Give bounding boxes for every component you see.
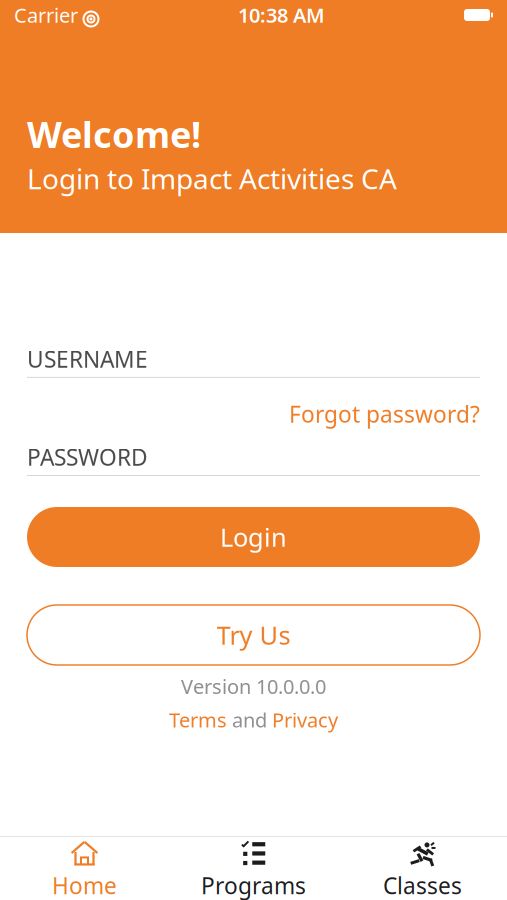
staticText: Welcome! [27,110,201,158]
staticText: Carrier [14,2,78,28]
staticText: Programs [201,870,306,900]
staticText: Home [52,870,117,900]
staticText: Login [220,520,287,554]
staticText: Privacy [272,707,338,733]
button[interactable]: Privacy [272,707,338,733]
staticText: 10:38 AM [238,2,325,28]
staticText: PASSWORD [27,442,148,472]
staticText: USERNAME [27,344,148,374]
button[interactable]: Terms [169,707,227,733]
staticText: Try Us [216,618,290,652]
staticText: and [232,707,267,733]
staticText: Login to Impact Activities CA [27,160,397,197]
button[interactable]: Home [0,830,169,900]
button[interactable]: Classes [338,830,507,900]
button[interactable]: Forgot password? [27,396,480,432]
button[interactable]: Programs [169,830,338,900]
staticText: Forgot password? [289,399,480,429]
staticText: Version 10.0.0.0 [181,673,326,700]
button[interactable]: Try Us [27,605,480,665]
button[interactable]: Login [27,507,480,567]
staticText: Terms [169,707,227,733]
staticText: Classes [383,870,462,900]
